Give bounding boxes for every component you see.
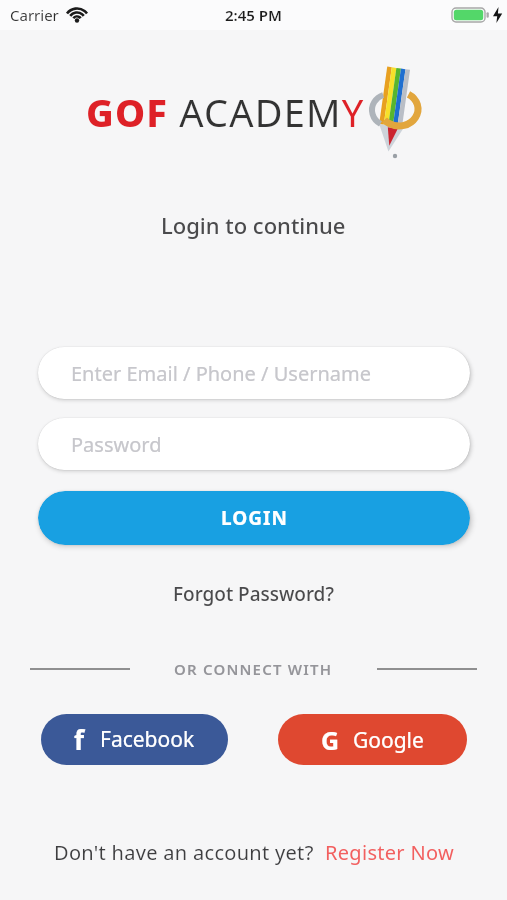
- staticText: G: [321, 723, 340, 757]
- staticText: Facebook: [100, 725, 195, 754]
- staticText: LOGIN: [221, 505, 288, 531]
- staticText: Register Now: [325, 839, 454, 866]
- button[interactable]: Register Now: [325, 839, 454, 866]
- staticText: Enter Email / Phone / Username: [71, 360, 371, 387]
- staticText: Login to continue: [161, 210, 346, 240]
- staticText: GOF ACADEMY: [86, 86, 365, 138]
- staticText: Carrier: [10, 5, 59, 25]
- button[interactable]: f: [41, 714, 228, 765]
- button[interactable]: LOGIN: [38, 491, 470, 545]
- staticText: f: [74, 722, 85, 757]
- button[interactable]: Enter Email / Phone / Username: [38, 347, 470, 399]
- button[interactable]: Forgot Password?: [173, 581, 334, 607]
- staticText: OR CONNECT WITH: [174, 659, 333, 679]
- staticText: Don't have an account yet?: [54, 839, 325, 866]
- staticText: Password: [71, 431, 162, 458]
- staticText: Google: [353, 726, 424, 755]
- button[interactable]: G: [278, 714, 467, 765]
- button[interactable]: Password: [38, 418, 470, 470]
- staticText: 2:45 PM: [225, 5, 282, 25]
- staticText: Forgot Password?: [173, 581, 334, 607]
